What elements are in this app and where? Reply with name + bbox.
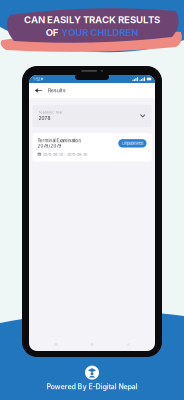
staticText: 2078-08-29 - 2078-09-30	[43, 152, 87, 156]
staticText: 1:52	[33, 77, 40, 81]
button[interactable]: Back	[32, 83, 45, 98]
button[interactable]: Terminal Examination 2078/2079	[32, 133, 151, 162]
staticText: 2078	[38, 115, 50, 121]
staticText: YOUR CHILDREN	[61, 27, 138, 38]
staticText: CAN EASILY TRACK RESULTS	[24, 14, 160, 26]
staticText: Academic Year	[38, 111, 62, 114]
staticText: Terminal Examination 2078/2079	[37, 138, 81, 149]
button[interactable]: Home	[83, 338, 101, 350]
staticText: Unpublished	[122, 141, 143, 146]
staticText: OF	[46, 27, 59, 38]
button[interactable]: Recent apps	[47, 338, 65, 350]
staticText	[40, 77, 41, 81]
staticText: Results	[48, 88, 66, 93]
button[interactable]: Academic Year	[32, 105, 151, 127]
staticText: Powered By E-Digital Nepal	[46, 383, 137, 391]
